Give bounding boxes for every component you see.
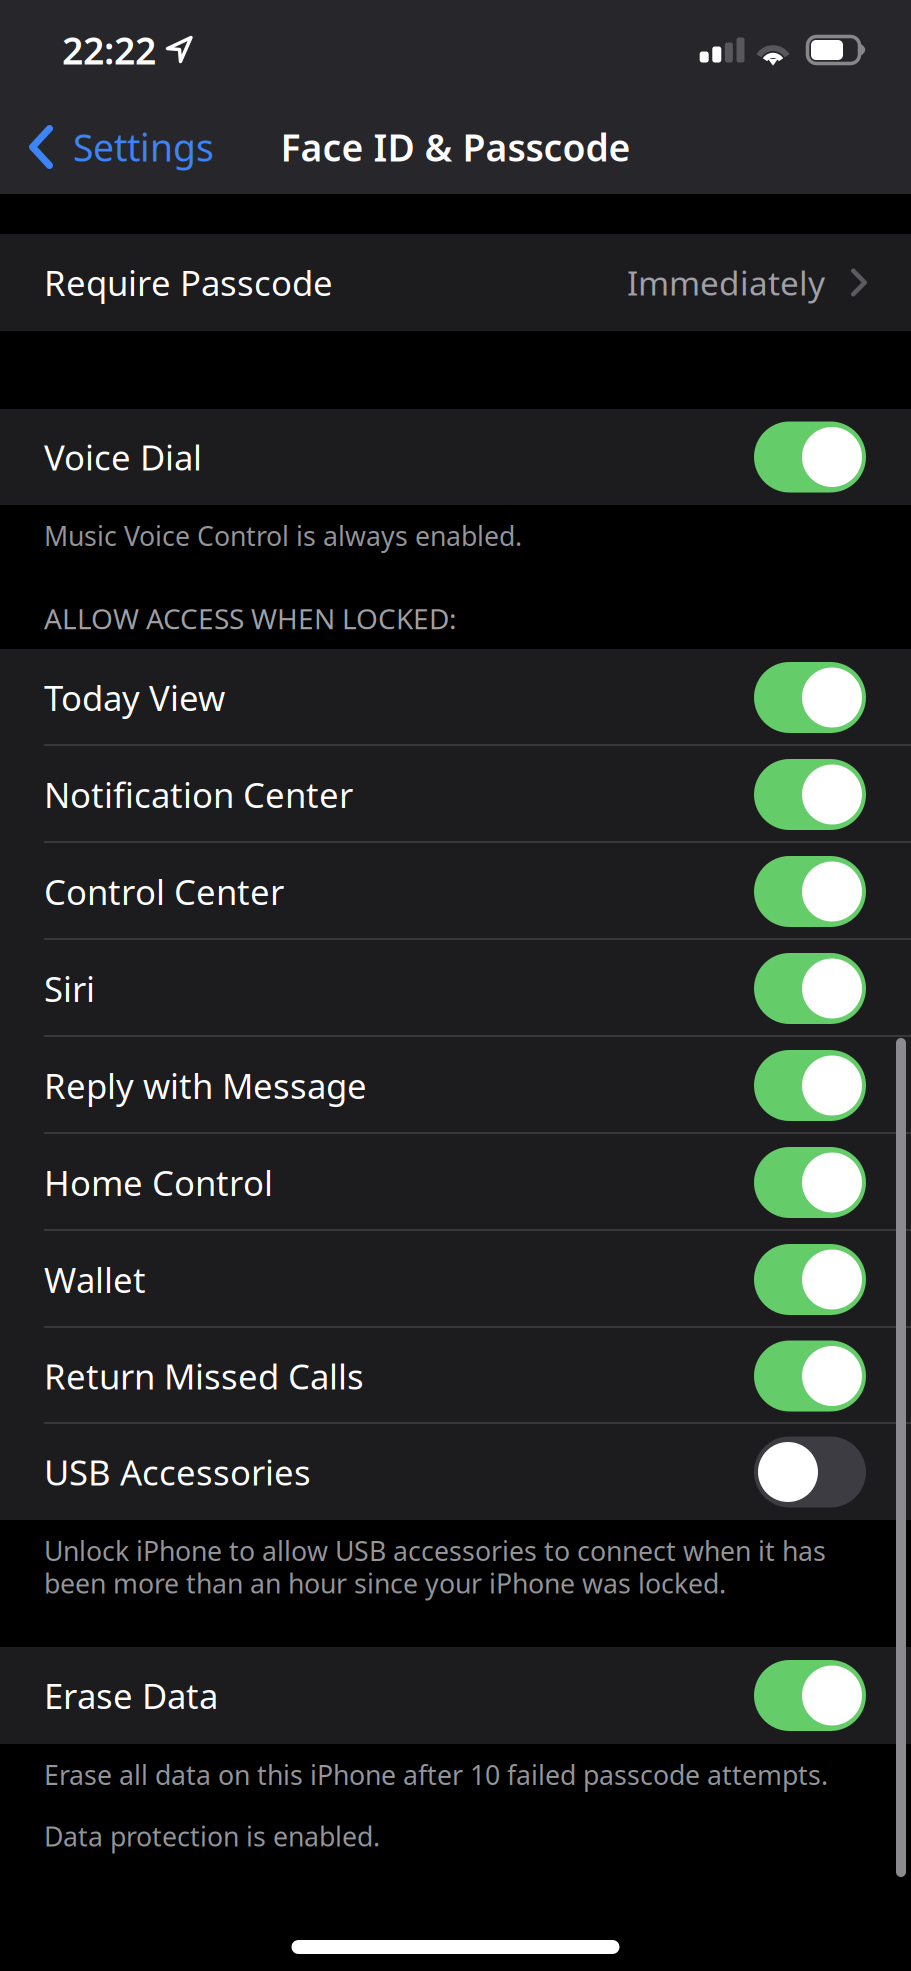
staticText: Today View: [44, 674, 225, 720]
button[interactable]: Reply with Message: [0, 1037, 911, 1134]
staticText: Erase Data: [44, 1672, 218, 1718]
staticText: Music Voice Control is always enabled.: [44, 518, 522, 553]
button[interactable]: Control Center: [0, 843, 911, 940]
staticText: USB Accessories: [44, 1449, 311, 1495]
staticText: Voice Dial: [44, 434, 202, 480]
staticText: ALLOW ACCESS WHEN LOCKED:: [44, 600, 457, 637]
staticText: Wallet: [44, 1256, 146, 1302]
staticText: Reply with Message: [44, 1062, 367, 1108]
button[interactable]: Home Control: [0, 1134, 911, 1231]
staticText: Erase all data on this iPhone after 10 f…: [44, 1757, 828, 1792]
staticText: Face ID & Passcode: [280, 122, 630, 172]
button[interactable]: Return Missed Calls: [0, 1328, 911, 1424]
staticText: Notification Center: [44, 771, 353, 817]
staticText: Control Center: [44, 868, 284, 914]
button[interactable]: Today View: [0, 649, 911, 746]
button[interactable]: USB Accessories: [0, 1424, 911, 1520]
staticText: been more than an hour since your iPhone…: [44, 1565, 726, 1601]
button[interactable]: Siri: [0, 940, 911, 1037]
button[interactable]: Voice Dial: [0, 409, 911, 505]
staticText: Settings: [73, 122, 214, 172]
staticText: Immediately: [627, 260, 825, 305]
staticText: Require Passcode: [44, 259, 333, 305]
button[interactable]: Notification Center: [0, 746, 911, 843]
staticText: Home Control: [44, 1159, 273, 1205]
staticText: 22:22: [62, 25, 156, 75]
button[interactable]: Back to Settings: [0, 100, 250, 194]
staticText: Siri: [44, 965, 95, 1011]
button[interactable]: Erase Data: [0, 1647, 911, 1744]
button[interactable]: Require Passcode: [0, 234, 911, 331]
staticText: Unlock iPhone to allow USB accessories t…: [44, 1533, 826, 1568]
staticText: Return Missed Calls: [44, 1353, 364, 1399]
staticText: Data protection is enabled.: [44, 1818, 380, 1854]
button[interactable]: Wallet: [0, 1231, 911, 1328]
